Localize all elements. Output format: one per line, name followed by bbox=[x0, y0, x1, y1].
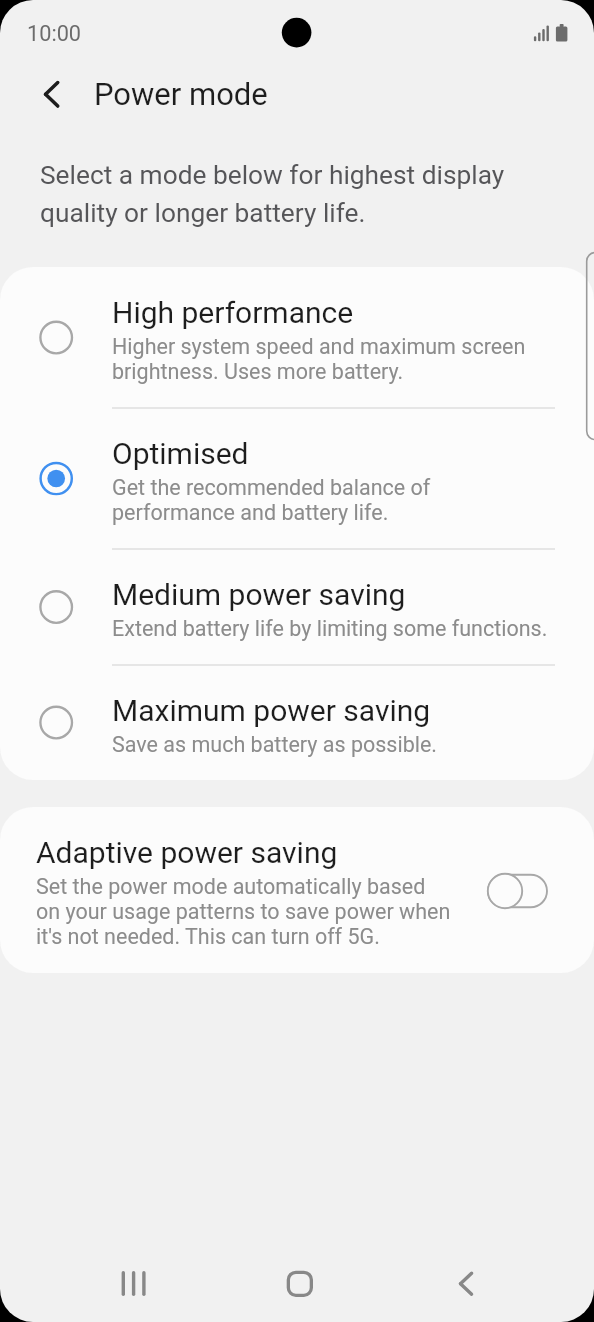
staticText: Extend battery life by limiting some fun… bbox=[112, 616, 552, 641]
button[interactable]: Maximum power saving bbox=[0, 665, 594, 780]
staticText: Power mode bbox=[94, 76, 268, 112]
button[interactable]: Medium power saving bbox=[0, 549, 594, 665]
button[interactable]: High performance bbox=[0, 267, 594, 408]
staticText: Get the recommended balance of performan… bbox=[112, 475, 552, 525]
staticText: High performance bbox=[112, 295, 354, 330]
staticText: Save as much battery as possible. bbox=[112, 732, 552, 757]
button[interactable]: Back bbox=[430, 1249, 500, 1319]
staticText: Adaptive power saving bbox=[36, 835, 338, 870]
staticText: Higher system speed and maximum screen b… bbox=[112, 334, 552, 384]
staticText: Medium power saving bbox=[112, 577, 406, 612]
button[interactable]: Navigate up bbox=[19, 69, 70, 120]
button[interactable]: Home bbox=[262, 1249, 332, 1319]
button[interactable]: Recent apps bbox=[98, 1249, 168, 1319]
staticText: Optimised bbox=[112, 436, 249, 471]
staticText: Maximum power saving bbox=[112, 693, 431, 728]
button[interactable]: Adaptive power saving bbox=[0, 807, 594, 973]
button[interactable]: Adaptive power saving switch, off bbox=[483, 868, 557, 914]
staticText: 10:00 bbox=[27, 21, 82, 46]
button[interactable]: Optimised bbox=[0, 408, 594, 549]
staticText: Select a mode below for highest display … bbox=[40, 160, 540, 229]
staticText: Set the power mode automatically based o… bbox=[36, 874, 453, 949]
